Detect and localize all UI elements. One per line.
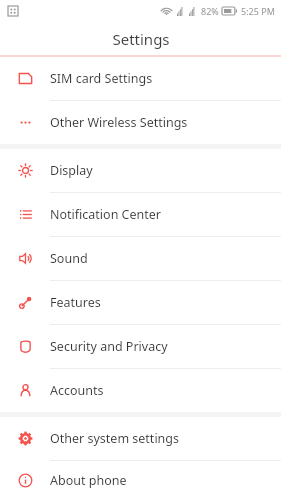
staticText: Sound xyxy=(50,250,88,267)
staticText: Settings xyxy=(112,29,170,49)
staticText: Notification Center xyxy=(50,206,162,223)
staticText: Security and Privacy xyxy=(50,338,168,355)
button[interactable]: Features xyxy=(0,281,281,324)
button[interactable]: About phone xyxy=(0,461,281,500)
button[interactable]: Accounts xyxy=(0,369,281,412)
button[interactable]: Display xyxy=(0,149,281,192)
staticText: 5:25 PM xyxy=(241,5,275,17)
staticText: Display xyxy=(50,162,93,179)
button[interactable]: SIM card Settings xyxy=(0,57,281,100)
staticText: About phone xyxy=(50,472,127,489)
staticText: 82% xyxy=(201,5,219,17)
staticText: Accounts xyxy=(50,382,104,399)
button[interactable]: Other Wireless Settings xyxy=(0,101,281,144)
staticText: Other system settings xyxy=(50,430,180,447)
button[interactable]: Security and Privacy xyxy=(0,325,281,368)
button[interactable]: Notification Center xyxy=(0,193,281,236)
staticText: Features xyxy=(50,294,101,311)
staticText: Other Wireless Settings xyxy=(50,114,188,131)
button[interactable]: Sound xyxy=(0,237,281,280)
button[interactable]: Other system settings xyxy=(0,417,281,460)
staticText: SIM card Settings xyxy=(50,70,153,87)
